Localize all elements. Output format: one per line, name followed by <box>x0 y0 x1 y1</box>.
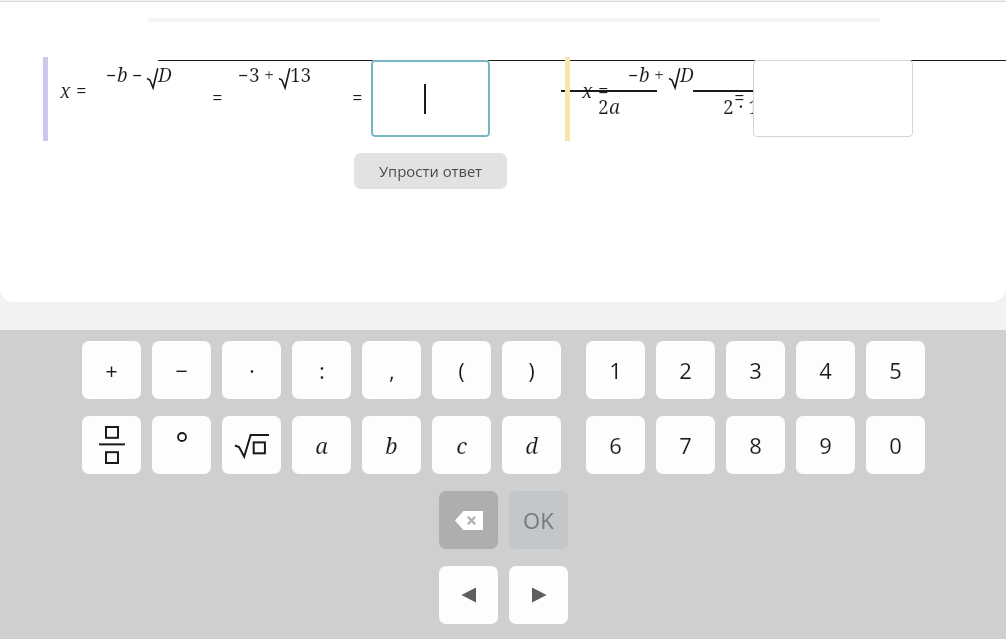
staticText: + <box>264 63 275 88</box>
staticText: 6 <box>609 430 622 460</box>
staticText: b <box>385 430 398 460</box>
staticText: x <box>60 78 71 104</box>
staticText: − <box>175 355 188 385</box>
button[interactable]: Move cursor right <box>509 566 568 624</box>
button[interactable]: Square root <box>222 416 281 474</box>
staticText: 0 <box>889 430 902 460</box>
button[interactable]: 4 <box>796 341 855 399</box>
staticText: − <box>238 63 249 88</box>
staticText: − <box>628 63 639 88</box>
button[interactable]: 3 <box>726 341 785 399</box>
staticText: · <box>249 355 255 385</box>
button[interactable]: 2 <box>656 341 715 399</box>
button[interactable]: 7 <box>656 416 715 474</box>
staticText: x <box>582 78 593 104</box>
staticText: = <box>352 85 363 111</box>
staticText: , <box>389 355 395 385</box>
staticText: OK <box>523 505 554 535</box>
staticText: 1 <box>609 355 622 385</box>
staticText: d <box>525 430 538 460</box>
staticText: − <box>132 63 143 88</box>
button[interactable]: 9 <box>796 416 855 474</box>
staticText: 2 <box>598 94 609 120</box>
button[interactable]: + <box>82 341 141 399</box>
staticText: 2 <box>679 355 692 385</box>
button[interactable]: ) <box>502 341 561 399</box>
button[interactable]: 8 <box>726 416 785 474</box>
staticText: 8 <box>749 430 762 460</box>
button[interactable]: 6 <box>586 416 645 474</box>
button[interactable]: a <box>292 416 351 474</box>
staticText: ) <box>528 355 535 385</box>
button[interactable]: , <box>362 341 421 399</box>
staticText: 3 <box>749 355 762 385</box>
staticText: 3 <box>249 62 260 88</box>
button[interactable]: 1 <box>586 341 645 399</box>
button[interactable]: d <box>502 416 561 474</box>
staticText: D <box>158 62 172 88</box>
button[interactable]: Backspace <box>439 491 498 549</box>
staticText: b <box>639 62 650 88</box>
button[interactable]: Move cursor left <box>439 566 498 624</box>
staticText: a <box>315 430 328 460</box>
staticText: 4 <box>819 355 832 385</box>
staticText: ( <box>458 355 465 385</box>
staticText: = <box>212 85 223 111</box>
staticText: − <box>106 63 117 88</box>
button[interactable]: 0 <box>866 416 925 474</box>
button[interactable]: Fraction <box>82 416 141 474</box>
staticText: Упрости ответ <box>379 161 483 181</box>
button[interactable]: Second answer input <box>753 60 913 137</box>
staticText: c <box>456 430 467 460</box>
button[interactable]: Degree <box>152 416 211 474</box>
staticText: 5 <box>889 355 902 385</box>
button[interactable]: ( <box>432 341 491 399</box>
staticText: D <box>680 62 694 88</box>
button[interactable]: Answer input <box>371 60 490 137</box>
staticText: 13 <box>290 62 312 88</box>
button[interactable]: OK <box>509 491 568 549</box>
button[interactable]: b <box>362 416 421 474</box>
button[interactable]: : <box>292 341 351 399</box>
staticText: = <box>598 78 609 104</box>
staticText: = <box>76 78 87 104</box>
button[interactable]: − <box>152 341 211 399</box>
staticText: b <box>117 62 128 88</box>
button[interactable]: 5 <box>866 341 925 399</box>
staticText: = <box>734 85 745 111</box>
button[interactable]: Упрости ответ <box>354 153 507 189</box>
staticText: a <box>609 94 621 120</box>
staticText: + <box>105 355 118 385</box>
button[interactable]: · <box>222 341 281 399</box>
staticText: 2 · 1 <box>723 94 759 120</box>
staticText: + <box>654 63 665 88</box>
staticText: 7 <box>679 430 692 460</box>
staticText: 9 <box>819 430 832 460</box>
staticText: : <box>319 355 325 385</box>
button[interactable]: c <box>432 416 491 474</box>
